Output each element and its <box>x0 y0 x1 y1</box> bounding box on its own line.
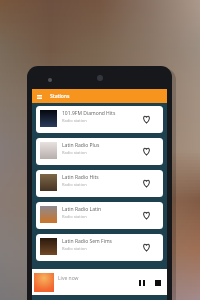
button[interactable]: Open navigation menu <box>32 89 167 103</box>
button[interactable]: Stop <box>152 277 163 288</box>
button[interactable]: Pause <box>136 277 147 288</box>
staticText: Latin Radio Sem Fims <box>62 238 113 245</box>
button[interactable]: Favorite <box>140 242 152 254</box>
staticText: Radio station <box>62 214 87 219</box>
button[interactable]: Latin Radio Latin <box>36 202 163 229</box>
staticText: 101.9FM Diamond Hits <box>62 110 116 117</box>
button[interactable]: Favorite <box>140 178 152 190</box>
staticText: Radio station <box>62 246 87 251</box>
staticText: Radio station <box>62 150 87 155</box>
button[interactable]: Favorite <box>140 146 152 158</box>
button[interactable]: Favorite <box>140 114 152 126</box>
staticText: Radio station <box>62 182 87 187</box>
staticText: Stations <box>50 93 70 100</box>
button[interactable]: 101.9FM Diamond Hits <box>36 106 163 133</box>
staticText: Latin Radio Latin <box>62 206 102 213</box>
staticText: Radio station <box>62 118 87 123</box>
staticText: Live now <box>58 275 79 282</box>
staticText: Latin Radio Hits <box>62 174 99 181</box>
button[interactable]: Latin Radio Plus <box>36 138 163 165</box>
button[interactable]: Live now <box>32 269 167 295</box>
staticText: Latin Radio Plus <box>62 142 100 149</box>
button[interactable]: Latin Radio Hits <box>36 170 163 197</box>
button[interactable]: Open navigation menu <box>35 92 44 101</box>
button[interactable]: Favorite <box>140 210 152 222</box>
button[interactable]: Latin Radio Sem Fims <box>36 234 163 261</box>
